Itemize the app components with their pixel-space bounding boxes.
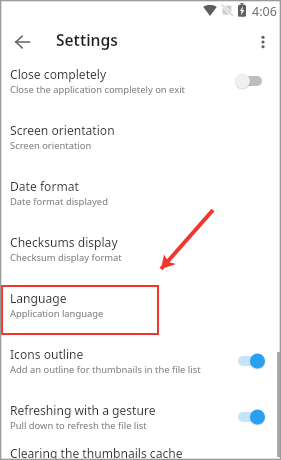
staticText: Application language [10,307,104,320]
staticText: Checksums display [10,234,118,250]
staticText: Date format [10,178,79,194]
staticText: Screen orientation [10,139,92,152]
staticText: Icons outline [10,346,84,362]
staticText: Checksum display format [10,251,122,264]
staticText: Refreshing with a gesture [10,402,156,418]
button[interactable]: Clearing the thumbnails cache [0,445,281,460]
staticText: 4:06 [252,3,277,20]
staticText: Screen orientation [10,122,115,138]
staticText: Pull down to refresh the file list [10,419,147,432]
button[interactable]: Date format [0,165,281,221]
staticText: Date format displayed [10,195,108,208]
button[interactable]: Screen orientation [0,109,281,165]
staticText: Settings [56,29,118,50]
staticText: Language [10,290,67,306]
button[interactable]: Refreshing with a gesture [0,389,281,445]
button[interactable]: Back [9,29,35,55]
staticText: Add an outline for thumbnails in the fil… [10,363,201,376]
staticText: Close completely [10,66,107,82]
button[interactable]: Checksums display [0,221,281,277]
button[interactable]: More options [251,30,275,54]
staticText: Clearing the thumbnails cache [10,445,183,460]
button[interactable]: Language [0,277,281,333]
button[interactable]: Close completely [0,53,281,109]
button[interactable]: Icons outline [0,333,281,389]
staticText: Close the application completely on exit [10,83,186,96]
